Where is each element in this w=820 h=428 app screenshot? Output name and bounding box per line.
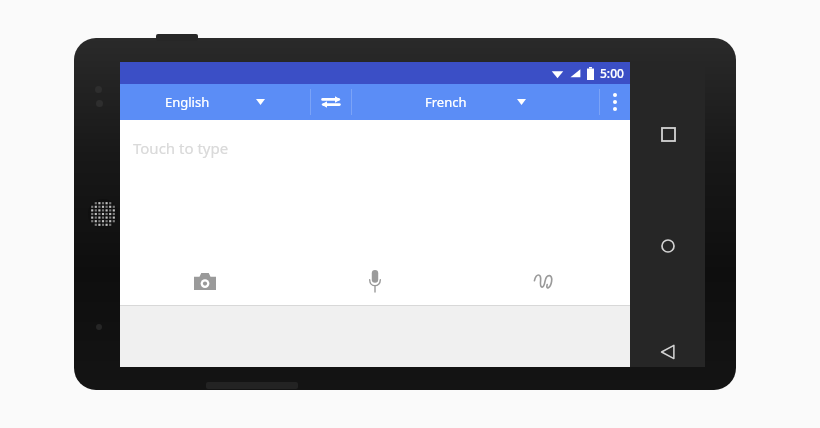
button[interactable]: Handwriting input — [460, 257, 630, 305]
button[interactable]: Back — [646, 336, 690, 367]
staticText: English — [165, 93, 210, 111]
button[interactable]: Voice input — [290, 257, 460, 305]
button[interactable]: Home — [646, 224, 690, 268]
staticText: 5:00 — [600, 65, 624, 81]
button[interactable]: More options — [600, 84, 630, 120]
staticText: Touch to type — [133, 138, 229, 158]
button[interactable]: Recent apps — [646, 112, 690, 156]
staticText: French — [425, 93, 467, 111]
button[interactable]: English — [120, 84, 310, 120]
button[interactable]: Touch to type — [120, 120, 630, 305]
button[interactable]: French — [352, 84, 599, 120]
button[interactable]: Camera input — [120, 257, 290, 305]
button[interactable]: Swap languages — [311, 84, 351, 120]
